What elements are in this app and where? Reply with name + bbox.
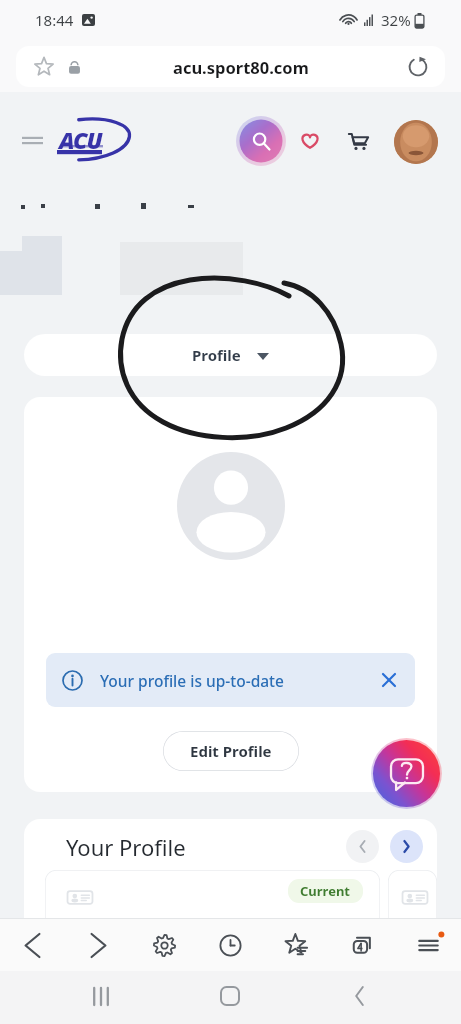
button[interactable]: Favourites xyxy=(298,129,322,153)
button[interactable]: Settings xyxy=(131,919,197,971)
button[interactable]: Forward xyxy=(65,919,131,971)
staticText: 18:44 xyxy=(35,10,74,30)
button[interactable]: Dismiss xyxy=(375,666,403,694)
button[interactable]: Recents xyxy=(77,972,125,1020)
button[interactable]: Bookmark xyxy=(30,53,58,81)
button[interactable]: Next xyxy=(390,830,423,863)
staticText: acu.sport80.com xyxy=(173,56,309,78)
staticText: Your Profile xyxy=(66,832,186,862)
button[interactable]: Account xyxy=(394,120,438,164)
staticText: Profile xyxy=(192,345,241,365)
button[interactable]: Bookmark xyxy=(16,46,445,87)
button[interactable]: Help chat xyxy=(369,736,444,811)
staticText: Your profile is up-to-date xyxy=(100,670,284,691)
button[interactable]: Cart xyxy=(346,129,370,153)
button[interactable]: ACU home xyxy=(53,118,131,162)
button[interactable]: Bookmarks xyxy=(263,919,329,971)
button[interactable]: Menu xyxy=(22,134,43,147)
other: Secure xyxy=(68,60,81,74)
button[interactable]: Reload xyxy=(403,52,433,82)
button[interactable] xyxy=(388,870,437,940)
button[interactable]: Profile xyxy=(24,334,437,376)
staticText: Edit Profile xyxy=(190,741,272,761)
button[interactable]: Back xyxy=(335,972,383,1020)
staticText: ACU xyxy=(59,124,102,155)
button[interactable]: Tabs xyxy=(329,919,395,971)
button[interactable]: Home xyxy=(206,972,254,1020)
staticText: Current xyxy=(300,882,351,900)
button[interactable]: Current xyxy=(45,870,380,940)
staticText: 32% xyxy=(381,10,411,30)
button[interactable]: More xyxy=(395,919,461,971)
button[interactable]: Back xyxy=(0,919,65,971)
button[interactable]: Search xyxy=(236,116,286,166)
button[interactable]: Previous xyxy=(346,830,379,863)
button[interactable]: History xyxy=(197,919,263,971)
button[interactable]: Edit Profile xyxy=(163,731,299,771)
